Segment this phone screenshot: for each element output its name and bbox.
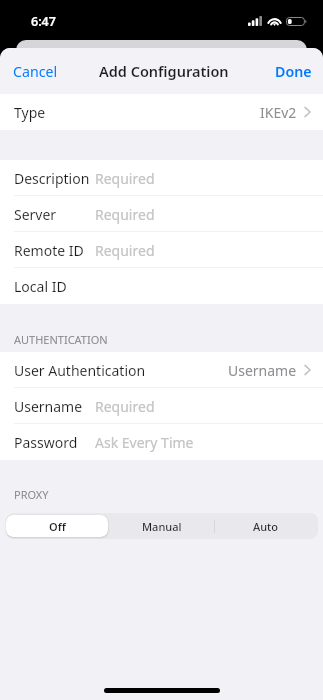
staticText: Password bbox=[14, 433, 78, 452]
staticText: Type bbox=[14, 103, 46, 122]
button[interactable]: Description bbox=[0, 160, 323, 196]
button[interactable]: Cancel bbox=[0, 53, 71, 90]
staticText: Required bbox=[95, 169, 155, 188]
staticText: Done bbox=[275, 62, 312, 81]
button[interactable]: Off bbox=[6, 515, 108, 537]
staticText: Username bbox=[14, 397, 83, 416]
staticText: Cancel bbox=[13, 62, 58, 81]
button[interactable] bbox=[6, 513, 110, 539]
button[interactable]: Server bbox=[0, 196, 323, 232]
staticText: Required bbox=[95, 205, 155, 224]
staticText: Required bbox=[95, 241, 155, 260]
staticText: IKEv2 bbox=[260, 103, 297, 122]
staticText: Remote ID bbox=[14, 241, 84, 260]
button[interactable]: Type bbox=[0, 94, 323, 130]
button[interactable]: Done bbox=[262, 53, 323, 90]
staticText: Auto bbox=[253, 519, 279, 534]
staticText: User Authentication bbox=[14, 361, 146, 380]
button[interactable]: Manual bbox=[110, 513, 214, 539]
staticText: Local ID bbox=[14, 277, 67, 296]
button[interactable]: User Authentication bbox=[0, 352, 323, 388]
staticText: AUTHENTICATION bbox=[14, 332, 108, 347]
staticText: Description bbox=[14, 169, 90, 188]
staticText: PROXY bbox=[14, 487, 49, 502]
button[interactable]: Remote ID bbox=[0, 232, 323, 268]
button[interactable]: Password bbox=[0, 424, 323, 460]
staticText: Server bbox=[14, 205, 57, 224]
staticText: Username bbox=[228, 361, 297, 380]
staticText: Required bbox=[95, 397, 155, 416]
staticText: Off bbox=[49, 519, 66, 534]
staticText: Add Configuration bbox=[99, 61, 229, 81]
staticText: 6:47 bbox=[31, 13, 56, 30]
button[interactable]: Local ID bbox=[0, 268, 323, 304]
button[interactable]: Username bbox=[0, 388, 323, 424]
staticText: Ask Every Time bbox=[95, 433, 194, 452]
staticText: Manual bbox=[142, 519, 182, 534]
button[interactable]: Auto bbox=[214, 513, 318, 539]
